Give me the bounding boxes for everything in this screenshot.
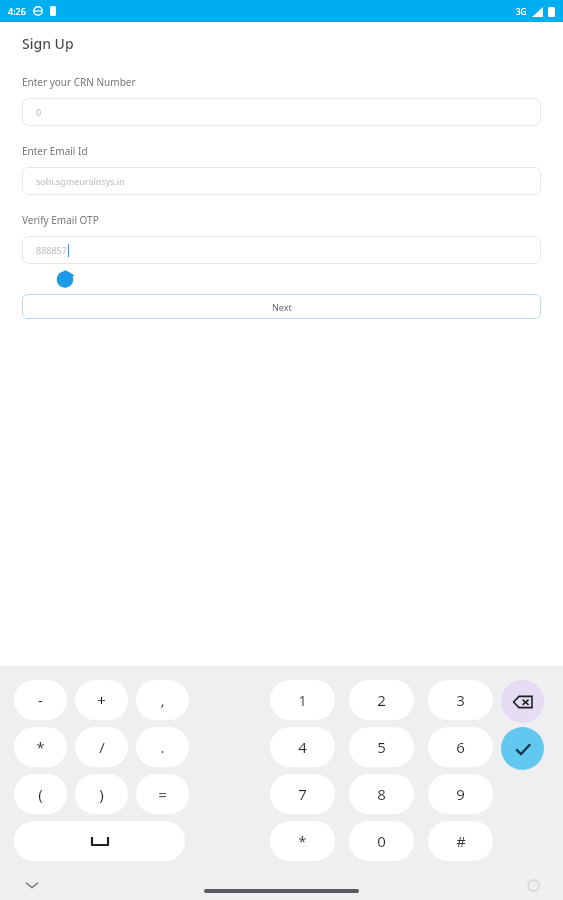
button[interactable]: / bbox=[75, 727, 128, 767]
button[interactable]: Backspace bbox=[501, 680, 544, 723]
staticText: Sign Up bbox=[22, 34, 74, 53]
staticText: 4:26 bbox=[8, 5, 26, 17]
button[interactable]: 0 bbox=[349, 821, 414, 861]
staticText: 9 bbox=[456, 784, 465, 804]
button[interactable]: , bbox=[136, 680, 189, 720]
button[interactable]: 9 bbox=[428, 774, 493, 814]
button[interactable]: * bbox=[14, 727, 67, 767]
button[interactable]: 6 bbox=[428, 727, 493, 767]
button[interactable]: 0 bbox=[22, 98, 541, 126]
button[interactable]: . bbox=[136, 727, 189, 767]
staticText: 1 bbox=[298, 690, 307, 710]
button[interactable]: Emoji bbox=[521, 873, 545, 897]
staticText: 5 bbox=[377, 737, 386, 757]
staticText: 3 bbox=[456, 690, 465, 710]
staticText: , bbox=[160, 690, 165, 710]
staticText: - bbox=[38, 690, 43, 710]
button[interactable]: # bbox=[428, 821, 493, 861]
button[interactable]: * bbox=[270, 821, 335, 861]
button[interactable]: 2 bbox=[349, 680, 414, 720]
button[interactable]: 7 bbox=[270, 774, 335, 814]
staticText: / bbox=[99, 737, 105, 757]
button[interactable]: Hide keyboard bbox=[20, 873, 44, 897]
button[interactable]: ) bbox=[75, 774, 128, 814]
button[interactable]: 5 bbox=[349, 727, 414, 767]
staticText: Next bbox=[272, 301, 292, 313]
button[interactable]: sohi.sgmeuralnsys.in bbox=[22, 167, 541, 195]
button[interactable]: 888857 bbox=[22, 236, 541, 264]
staticText: # bbox=[456, 831, 466, 851]
staticText: = bbox=[158, 784, 167, 804]
staticText: 6 bbox=[456, 737, 465, 757]
staticText: Enter your CRN Number bbox=[22, 75, 136, 89]
button[interactable]: 8 bbox=[349, 774, 414, 814]
staticText: + bbox=[97, 690, 106, 710]
button[interactable]: ( bbox=[14, 774, 67, 814]
staticText: 7 bbox=[298, 784, 307, 804]
staticText: * bbox=[36, 737, 45, 757]
staticText: 0 bbox=[36, 106, 42, 118]
staticText: ) bbox=[99, 784, 104, 804]
staticText: 3G bbox=[516, 6, 527, 17]
staticText: 8 bbox=[377, 784, 386, 804]
button[interactable]: 1 bbox=[270, 680, 335, 720]
staticText: . bbox=[160, 737, 165, 757]
staticText: 2 bbox=[377, 690, 386, 710]
button[interactable]: Space bbox=[14, 821, 185, 861]
button[interactable]: 4 bbox=[270, 727, 335, 767]
staticText: 4 bbox=[298, 737, 307, 757]
staticText: Enter Email Id bbox=[22, 144, 88, 158]
staticText: Verify Email OTP bbox=[22, 213, 99, 227]
button[interactable]: Enter bbox=[501, 727, 544, 770]
staticText: ( bbox=[38, 784, 43, 804]
button[interactable]: + bbox=[75, 680, 128, 720]
staticText: 0 bbox=[377, 831, 386, 851]
button[interactable]: = bbox=[136, 774, 189, 814]
staticText: sohi.sgmeuralnsys.in bbox=[36, 175, 125, 187]
staticText: 888857 bbox=[36, 244, 67, 256]
button[interactable]: - bbox=[14, 680, 67, 720]
button[interactable]: 3 bbox=[428, 680, 493, 720]
button[interactable]: Next bbox=[22, 294, 541, 319]
staticText: * bbox=[298, 831, 307, 851]
